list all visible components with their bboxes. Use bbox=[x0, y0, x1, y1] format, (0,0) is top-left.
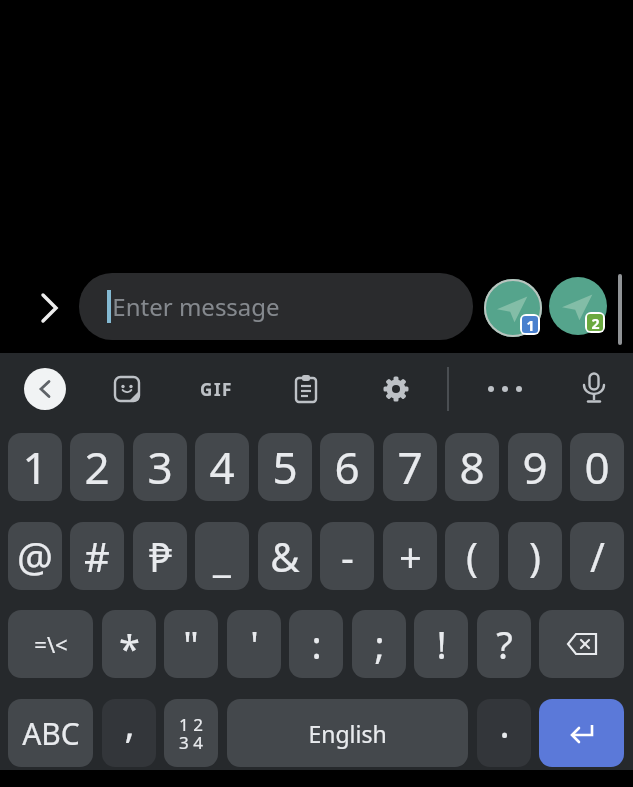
staticText: 1 bbox=[526, 316, 535, 333]
button[interactable]: 2 bbox=[70, 433, 124, 501]
button[interactable] bbox=[486, 375, 524, 403]
button[interactable]: 6 bbox=[320, 433, 374, 501]
staticText: 2 bbox=[591, 314, 600, 331]
button[interactable] bbox=[580, 372, 608, 406]
staticText: @ bbox=[17, 529, 53, 583]
staticText: " bbox=[183, 618, 199, 670]
button[interactable] bbox=[113, 375, 141, 403]
button[interactable]: Enter message bbox=[79, 273, 473, 340]
button[interactable]: ? bbox=[477, 610, 531, 678]
button[interactable] bbox=[382, 375, 410, 403]
staticText: =\< bbox=[34, 629, 68, 659]
staticText: 2 bbox=[84, 437, 110, 497]
button[interactable]: ! bbox=[414, 610, 468, 678]
button[interactable]: 8 bbox=[445, 433, 499, 501]
staticText: ) bbox=[529, 529, 541, 583]
staticText: Enter message bbox=[112, 290, 280, 323]
button[interactable]: 1 bbox=[8, 433, 62, 501]
button[interactable]: ( bbox=[445, 522, 499, 590]
button[interactable] bbox=[484, 279, 542, 337]
staticText: 8 bbox=[459, 437, 485, 497]
button[interactable]: _ bbox=[195, 522, 249, 590]
button[interactable] bbox=[549, 277, 607, 335]
button[interactable]: ABC bbox=[8, 699, 93, 767]
button[interactable]: ' bbox=[227, 610, 281, 678]
button[interactable] bbox=[24, 368, 66, 410]
button[interactable]: GIF bbox=[196, 376, 236, 402]
button[interactable]: 4 bbox=[195, 433, 249, 501]
staticText: / bbox=[590, 529, 605, 583]
staticText: : bbox=[311, 618, 322, 670]
button[interactable] bbox=[539, 699, 624, 767]
button[interactable]: * bbox=[102, 610, 156, 678]
button[interactable]: 0 bbox=[570, 433, 624, 501]
button[interactable]: . bbox=[477, 699, 531, 767]
staticText: + bbox=[399, 529, 422, 583]
staticText: ABC bbox=[22, 713, 80, 754]
staticText: ! bbox=[436, 618, 447, 670]
staticText: ( bbox=[466, 529, 478, 583]
button[interactable]: + bbox=[383, 522, 437, 590]
button[interactable]: - bbox=[320, 522, 374, 590]
staticText: 3 bbox=[147, 437, 173, 497]
staticText: 5 bbox=[272, 437, 298, 497]
button[interactable]: 5 bbox=[258, 433, 312, 501]
staticText: & bbox=[270, 529, 300, 583]
button[interactable]: # bbox=[70, 522, 124, 590]
button[interactable]: English bbox=[227, 699, 468, 767]
staticText: 3 4 bbox=[179, 731, 203, 754]
staticText: . bbox=[499, 699, 510, 749]
staticText: * bbox=[119, 622, 140, 674]
staticText: 7 bbox=[397, 437, 423, 497]
button[interactable]: ) bbox=[508, 522, 562, 590]
button[interactable]: 3 bbox=[133, 433, 187, 501]
staticText: ; bbox=[374, 618, 385, 670]
staticText: # bbox=[84, 529, 110, 583]
button[interactable]: =\< bbox=[8, 610, 93, 678]
button[interactable]: ₱ bbox=[133, 522, 187, 590]
staticText: 4 bbox=[209, 437, 235, 497]
button[interactable]: 7 bbox=[383, 433, 437, 501]
button[interactable] bbox=[34, 290, 64, 326]
staticText: GIF bbox=[200, 378, 233, 401]
staticText: , bbox=[124, 699, 135, 749]
button[interactable]: : bbox=[289, 610, 343, 678]
staticText: 0 bbox=[584, 437, 610, 497]
button[interactable]: & bbox=[258, 522, 312, 590]
button[interactable] bbox=[539, 610, 624, 678]
button[interactable]: , bbox=[102, 699, 156, 767]
staticText: English bbox=[308, 718, 387, 749]
staticText: 1 2 bbox=[179, 713, 203, 736]
staticText: 1 bbox=[22, 437, 48, 497]
staticText: - bbox=[341, 529, 354, 583]
button[interactable]: @ bbox=[8, 522, 62, 590]
staticText: _ bbox=[213, 529, 231, 583]
button[interactable] bbox=[293, 374, 319, 404]
staticText: ₱ bbox=[149, 529, 172, 583]
button[interactable]: " bbox=[164, 610, 218, 678]
staticText: ? bbox=[496, 618, 513, 670]
button[interactable]: 9 bbox=[508, 433, 562, 501]
button[interactable]: / bbox=[570, 522, 624, 590]
staticText: 6 bbox=[334, 437, 360, 497]
staticText: ' bbox=[250, 618, 259, 670]
button[interactable]: ; bbox=[352, 610, 406, 678]
staticText: 9 bbox=[522, 437, 548, 497]
button[interactable]: 1 2 bbox=[164, 699, 218, 767]
